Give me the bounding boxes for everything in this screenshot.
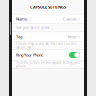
button[interactable]: Ring Your Phone [12, 50, 84, 60]
staticText: > [78, 16, 80, 21]
button[interactable]: Tag [12, 32, 84, 41]
staticText: > [78, 34, 80, 39]
staticText: Give your capsule a name. [16, 26, 51, 29]
staticText: Choose a tag so you can filter and find … [16, 42, 76, 49]
button[interactable]: Name [12, 14, 84, 23]
staticText: Tag [16, 34, 22, 39]
staticText: Ring Your Phone [16, 52, 43, 58]
staticText: CAPSULE SETTINGS [30, 4, 66, 10]
staticText: Name [16, 16, 27, 21]
staticText: Press the button on the capsule to ring … [16, 61, 80, 68]
staticText: None [68, 34, 77, 39]
staticText: Capsule [63, 16, 77, 21]
